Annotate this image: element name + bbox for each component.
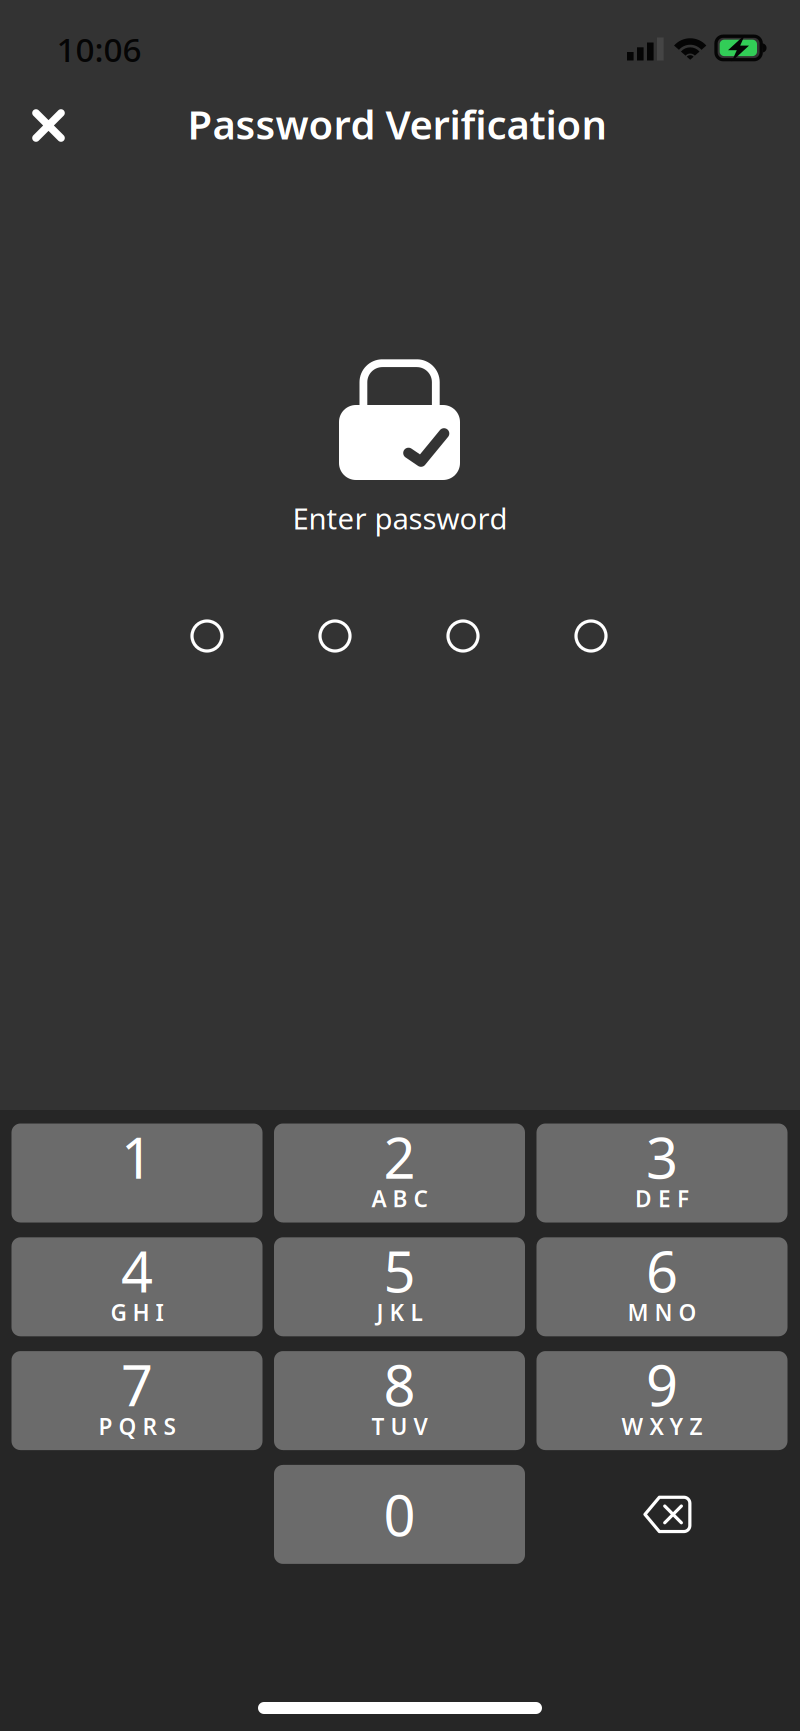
staticText: J K L — [376, 1297, 422, 1327]
button[interactable]: 5 — [274, 1237, 525, 1336]
staticText: 6 — [646, 1234, 678, 1308]
button[interactable]: 9 — [536, 1351, 787, 1450]
button[interactable]: 7 — [11, 1351, 262, 1450]
staticText: 1 — [121, 1120, 153, 1194]
button[interactable]: 6 — [536, 1237, 787, 1336]
staticText: T U V — [371, 1411, 427, 1441]
staticText: Password Verification — [187, 97, 607, 150]
button[interactable]: 2 — [274, 1123, 525, 1222]
staticText: 3 — [646, 1120, 678, 1194]
staticText: P Q R S — [98, 1411, 175, 1441]
button[interactable]: Close — [13, 90, 83, 160]
button[interactable]: Delete — [536, 1465, 787, 1564]
staticText: 4 — [121, 1234, 153, 1308]
staticText: D E F — [635, 1183, 689, 1213]
staticText: W X Y Z — [621, 1411, 702, 1441]
button[interactable]: 8 — [274, 1351, 525, 1450]
staticText: M N O — [627, 1297, 696, 1327]
staticText: 7 — [121, 1347, 153, 1422]
button[interactable]: 1 — [11, 1123, 262, 1222]
staticText: 9 — [646, 1347, 678, 1422]
staticText: 2 — [383, 1120, 415, 1194]
staticText: 5 — [383, 1234, 415, 1308]
staticText: G H I — [110, 1297, 163, 1327]
staticText: 10:06 — [56, 27, 141, 71]
button[interactable]: 0 — [274, 1465, 525, 1564]
staticText: A B C — [371, 1183, 427, 1213]
button[interactable]: 3 — [536, 1123, 787, 1222]
staticText: 8 — [383, 1347, 415, 1422]
staticText: 0 — [383, 1477, 415, 1552]
button[interactable]: 4 — [11, 1237, 262, 1336]
staticText: Enter password — [292, 498, 507, 537]
